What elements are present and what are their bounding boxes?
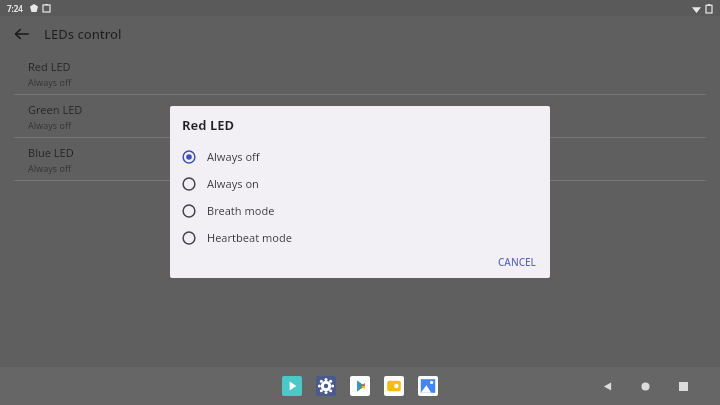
staticText: Heartbeat mode (207, 230, 292, 245)
staticText: Red LED (182, 116, 234, 134)
staticText: 7:24 (7, 3, 23, 14)
staticText: Always off (207, 149, 260, 164)
staticText: Always off (28, 162, 72, 174)
staticText: CANCEL (498, 255, 536, 269)
button[interactable]: Settings (315, 375, 337, 397)
button[interactable]: Always on (170, 170, 550, 197)
button[interactable]: Play Store (349, 375, 371, 397)
staticText: Always on (207, 176, 259, 191)
button[interactable]: Recent apps (672, 375, 694, 397)
staticText: Blue LED (28, 145, 74, 160)
staticText: Always off (28, 76, 72, 88)
button[interactable]: Breath mode (170, 197, 550, 224)
staticText: Red LED (28, 59, 71, 74)
staticText: Breath mode (207, 203, 275, 218)
staticText: LEDs control (44, 25, 122, 43)
button[interactable]: Blue LED (0, 138, 720, 180)
button[interactable]: Back (0, 16, 44, 52)
button[interactable]: Green LED (0, 95, 720, 137)
button[interactable]: Home (634, 375, 656, 397)
button[interactable]: Back (596, 375, 618, 397)
button[interactable]: CANCEL (492, 252, 542, 272)
staticText: Green LED (28, 102, 83, 117)
button[interactable]: Media player (281, 375, 303, 397)
button[interactable]: Always off (170, 143, 550, 170)
button[interactable]: Wallet (383, 375, 405, 397)
button[interactable]: Photos (417, 375, 439, 397)
button[interactable]: Heartbeat mode (170, 224, 550, 251)
staticText: Always off (28, 119, 72, 131)
button[interactable]: Red LED (0, 52, 720, 94)
